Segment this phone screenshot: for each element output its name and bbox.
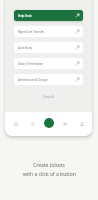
button[interactable]: Create ticket	[44, 118, 54, 128]
staticText: MgmtCore Transfer	[18, 30, 75, 34]
staticText: Architecture & Design	[18, 78, 75, 82]
staticText: Auto Body	[18, 46, 75, 50]
button[interactable]: Auto Body	[14, 42, 83, 53]
button[interactable]: Home	[12, 120, 19, 127]
button[interactable]: Salary Termination	[14, 58, 83, 69]
staticText: Create tickets	[33, 162, 65, 169]
button[interactable]: Search	[29, 120, 36, 127]
button[interactable]: Profile	[78, 120, 85, 127]
button[interactable]: Architecture & Design	[14, 74, 83, 85]
staticText: Salary Termination	[18, 62, 75, 66]
staticText: Help Desk	[18, 14, 75, 18]
staticText: View all	[14, 95, 83, 99]
button[interactable]: Help Desk	[14, 10, 83, 21]
button[interactable]: MgmtCore Transfer	[14, 26, 83, 37]
staticText: with a click of a button	[23, 171, 76, 178]
button[interactable]: Notifications	[61, 120, 68, 127]
